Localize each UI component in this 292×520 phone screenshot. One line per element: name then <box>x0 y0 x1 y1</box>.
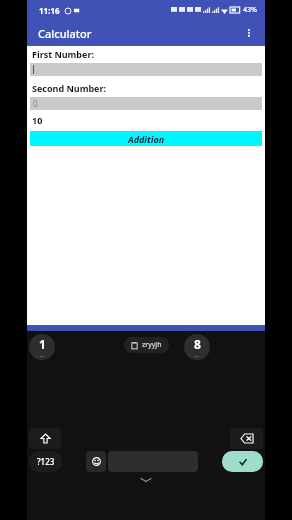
staticText: ... <box>195 352 200 359</box>
staticText: ... <box>40 352 45 359</box>
button[interactable]: ?123 <box>29 451 62 472</box>
button[interactable]: Backspace <box>230 428 263 449</box>
staticText: 10 <box>32 114 43 126</box>
staticText: 11:16 <box>39 5 60 16</box>
staticText: Calculator <box>38 26 92 41</box>
button[interactable]: Addition <box>30 131 262 146</box>
staticText: 8 <box>194 336 201 352</box>
button[interactable]: 0 <box>30 97 262 110</box>
staticText: Second Number: <box>32 82 107 94</box>
staticText: Addition <box>128 133 165 145</box>
staticText: First Number: <box>32 48 94 60</box>
staticText: 43% <box>243 5 257 15</box>
staticText: 1 <box>39 336 46 352</box>
staticText: ?123 <box>37 456 55 467</box>
button[interactable]: Shift <box>29 428 61 449</box>
button[interactable]: Emoji <box>86 451 106 472</box>
button[interactable]: Enter <box>222 451 263 472</box>
button[interactable]: More options <box>239 23 259 43</box>
staticText: 0 <box>33 98 38 109</box>
button[interactable]: zryyjh <box>124 337 169 353</box>
button[interactable] <box>30 63 262 76</box>
staticText: zryyjh <box>142 340 162 350</box>
